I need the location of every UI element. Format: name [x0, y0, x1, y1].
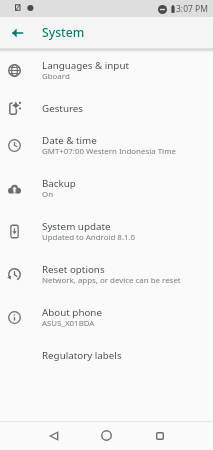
staticText: 3:07 PM [176, 3, 208, 15]
staticText: Backup [42, 177, 76, 190]
button[interactable]: Navigate up [4, 19, 31, 46]
button[interactable]: System update [0, 210, 213, 253]
staticText: System [42, 24, 85, 41]
staticText: GMT+07:00 Western Indonesia Time [42, 146, 176, 156]
staticText: Regulatory labels [42, 349, 122, 362]
staticText: Gboard [42, 71, 70, 81]
staticText: Languages & input [42, 59, 129, 72]
staticText: Date & time [42, 134, 97, 147]
staticText: About phone [42, 306, 102, 319]
staticText: Updated to Android 8.1.0 [42, 232, 136, 242]
button[interactable]: Home [80, 421, 133, 450]
button[interactable]: About phone [0, 296, 213, 339]
staticText: Reset options [42, 263, 105, 276]
button[interactable]: Gestures [0, 92, 213, 124]
button[interactable]: Reset options [0, 253, 213, 296]
button[interactable]: Date & time [0, 124, 213, 167]
button[interactable]: Back [27, 421, 80, 450]
button[interactable]: Languages & input [0, 49, 213, 92]
staticText: Network, apps, or device can be reset [42, 275, 181, 285]
staticText: On [42, 189, 54, 199]
button[interactable]: Regulatory labels [0, 339, 213, 371]
button[interactable]: Recent apps [133, 421, 186, 450]
staticText: Gestures [42, 102, 84, 115]
staticText: System update [42, 220, 111, 233]
staticText: ASUS_X01BDA [42, 318, 95, 328]
button[interactable]: Backup [0, 167, 213, 210]
